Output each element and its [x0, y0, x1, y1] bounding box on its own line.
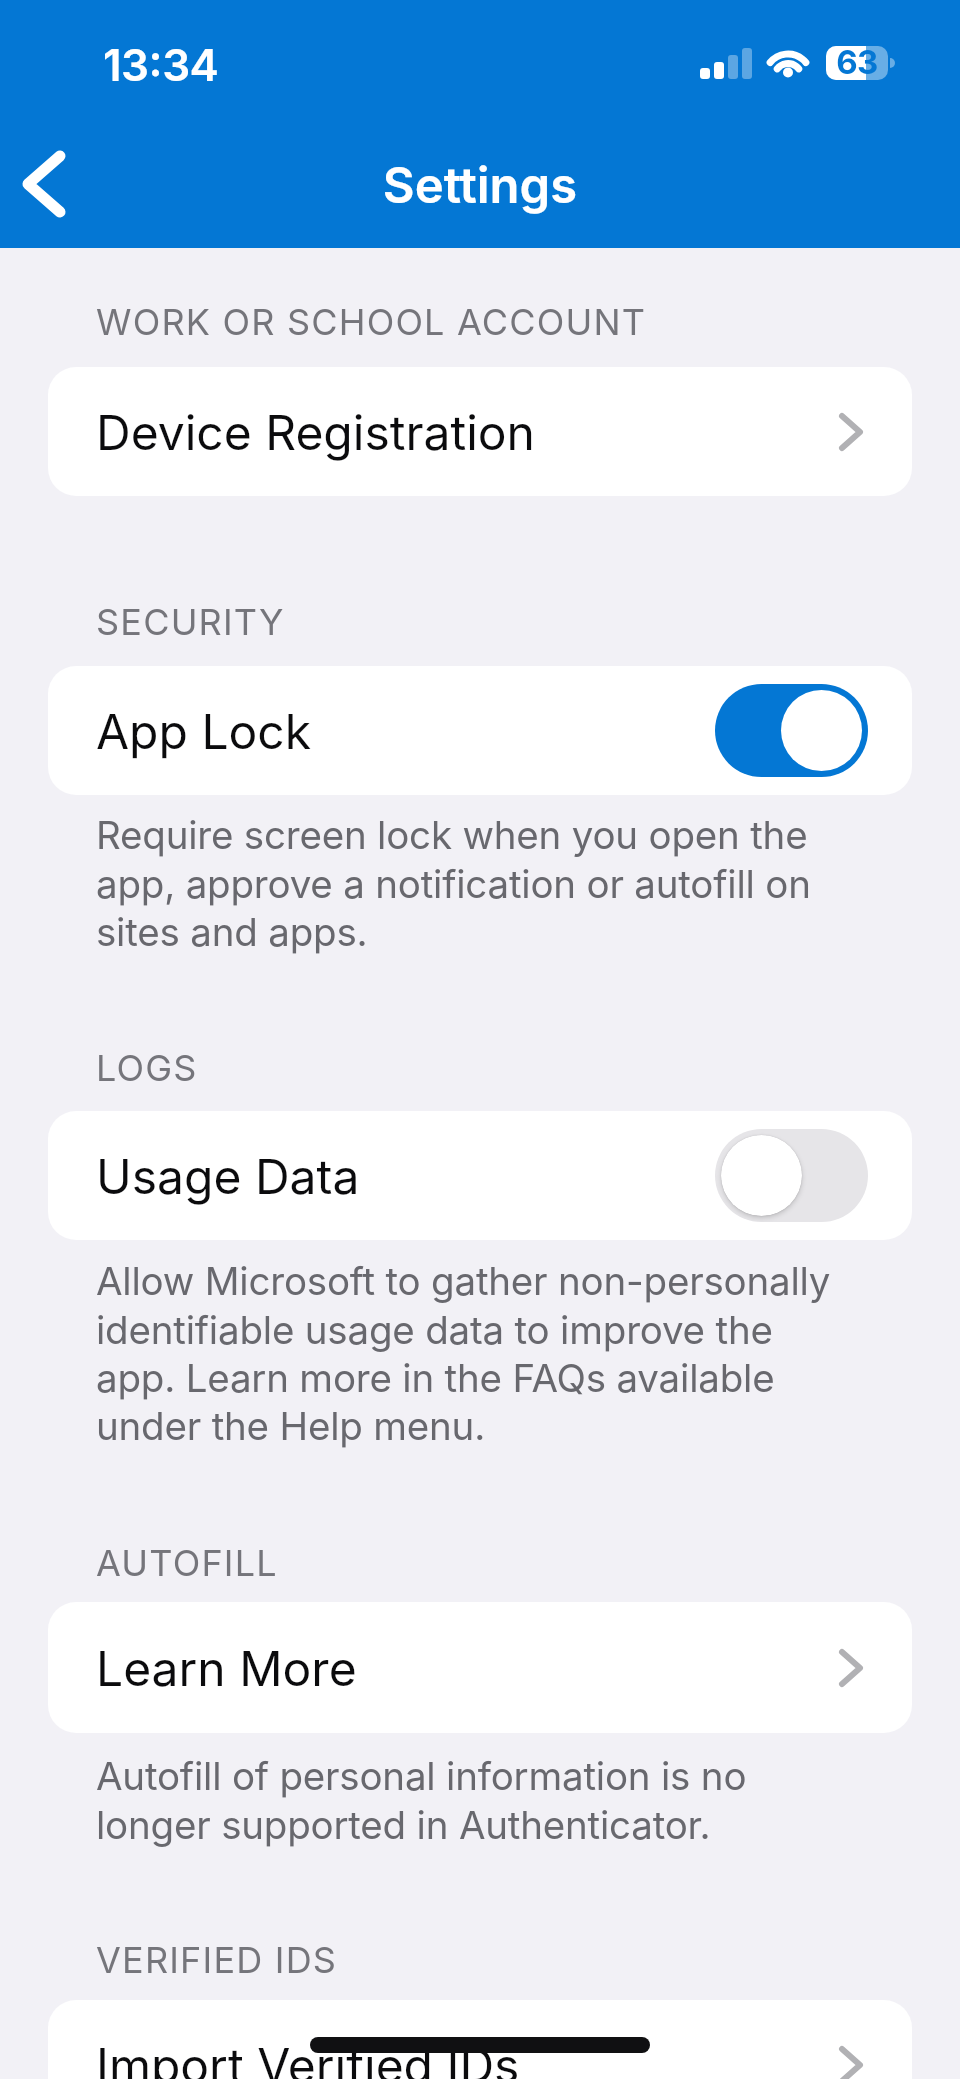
staticText: Settings [0, 156, 960, 215]
staticText: SECURITY [96, 600, 285, 644]
staticText: Import Verified IDs [96, 2036, 520, 2079]
staticText: VERIFIED IDS [96, 1938, 338, 1982]
staticText: AUTOFILL [96, 1541, 278, 1585]
staticText: Learn More [96, 1639, 357, 1697]
staticText: WORK OR SCHOOL ACCOUNT [96, 300, 647, 344]
staticText: 13:34 [103, 38, 219, 91]
button[interactable]: Import Verified IDs [48, 2000, 912, 2079]
button[interactable]: Device Registration [48, 367, 912, 496]
staticText: Allow Microsoft to gather non-personally… [96, 1258, 831, 1449]
staticText: Autofill of personal information is no l… [96, 1753, 747, 1848]
staticText: 63 [826, 42, 888, 82]
button[interactable] [715, 684, 868, 777]
staticText: Require screen lock when you open the ap… [96, 812, 811, 955]
button[interactable]: Learn More [48, 1602, 912, 1733]
button[interactable] [16, 148, 72, 220]
staticText: Usage Data [96, 1147, 360, 1205]
staticText: Device Registration [96, 403, 535, 461]
staticText: LOGS [96, 1046, 198, 1090]
staticText: App Lock [96, 702, 312, 760]
button[interactable] [715, 1129, 868, 1222]
button[interactable]: App Lock [48, 666, 912, 795]
button[interactable]: Usage Data [48, 1111, 912, 1240]
